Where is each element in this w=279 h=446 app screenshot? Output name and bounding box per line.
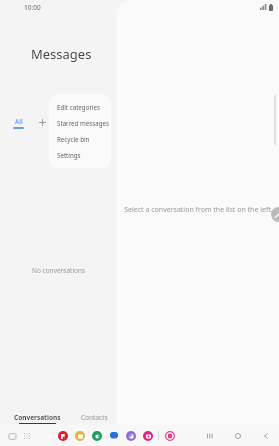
button[interactable]: Recycle bin (49, 131, 111, 147)
staticText: Contacts (81, 413, 108, 422)
staticText: Edit categories (57, 103, 101, 111)
button[interactable]: Edit categories (49, 99, 111, 115)
staticText: Starred messages (57, 119, 109, 127)
button[interactable]: Messages app (107, 429, 120, 442)
button[interactable]: App shortcut (73, 429, 86, 442)
staticText: Conversations (14, 413, 61, 422)
button[interactable]: Contacts (79, 412, 110, 423)
button[interactable]: Compose new message (271, 207, 279, 222)
button[interactable]: App shortcut (90, 429, 103, 442)
button[interactable]: Recents (202, 428, 217, 443)
staticText: Settings (57, 151, 81, 159)
button[interactable]: App shortcut (141, 429, 154, 442)
button[interactable]: All apps (21, 430, 33, 442)
staticText: No conversations (32, 266, 86, 275)
button[interactable]: Screenshot (6, 430, 18, 442)
button[interactable]: App shortcut (56, 429, 69, 442)
button[interactable]: Conversations (12, 412, 63, 425)
staticText: All (15, 117, 23, 126)
staticText: Recycle bin (57, 135, 90, 143)
button[interactable]: Recent app (163, 429, 176, 442)
button[interactable]: Starred messages (49, 115, 111, 131)
button[interactable]: Add category (36, 116, 48, 128)
button[interactable]: Home (230, 428, 245, 443)
button[interactable]: All (10, 116, 27, 130)
staticText: 10:00 (24, 3, 41, 12)
staticText: Messages (31, 45, 92, 63)
button[interactable]: Back (258, 428, 273, 443)
button[interactable]: Settings (49, 147, 111, 163)
button[interactable]: App shortcut (124, 429, 137, 442)
staticText: Select a conversation from the list on t… (124, 205, 273, 215)
